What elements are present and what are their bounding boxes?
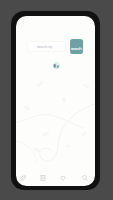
button[interactable]: Catalog <box>36 171 50 185</box>
button[interactable]: Explore <box>16 171 30 185</box>
button[interactable]: Search <box>78 171 92 185</box>
staticText: search city <box>37 45 53 49</box>
button[interactable]: search city <box>27 41 66 52</box>
button[interactable]: Favorites <box>56 171 70 185</box>
staticText: search <box>71 46 82 51</box>
button[interactable]: search <box>70 39 83 54</box>
